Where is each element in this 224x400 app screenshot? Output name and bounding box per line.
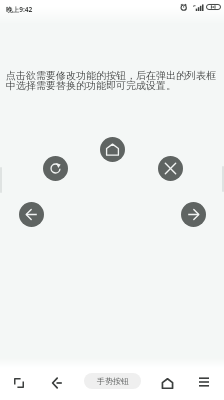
- staticText: 手势按钮: [97, 376, 129, 386]
- button[interactable]: Home: [157, 373, 177, 393]
- button[interactable]: Home: [100, 137, 125, 162]
- button[interactable]: Back: [47, 373, 67, 393]
- button[interactable]: Split screen: [9, 373, 29, 393]
- button[interactable]: Refresh: [43, 156, 68, 181]
- button[interactable]: Back: [19, 202, 44, 227]
- staticText: 晚上9:42: [6, 5, 33, 14]
- button[interactable]: Forward: [181, 202, 206, 227]
- button[interactable]: 手势按钮: [84, 373, 141, 389]
- button[interactable]: Menu: [194, 372, 214, 392]
- staticText: 点击欲需要修改功能的按钮，后在弹出的列表框中选择需要替换的功能即可完成设置。: [6, 69, 220, 92]
- button[interactable]: Close: [158, 156, 183, 181]
